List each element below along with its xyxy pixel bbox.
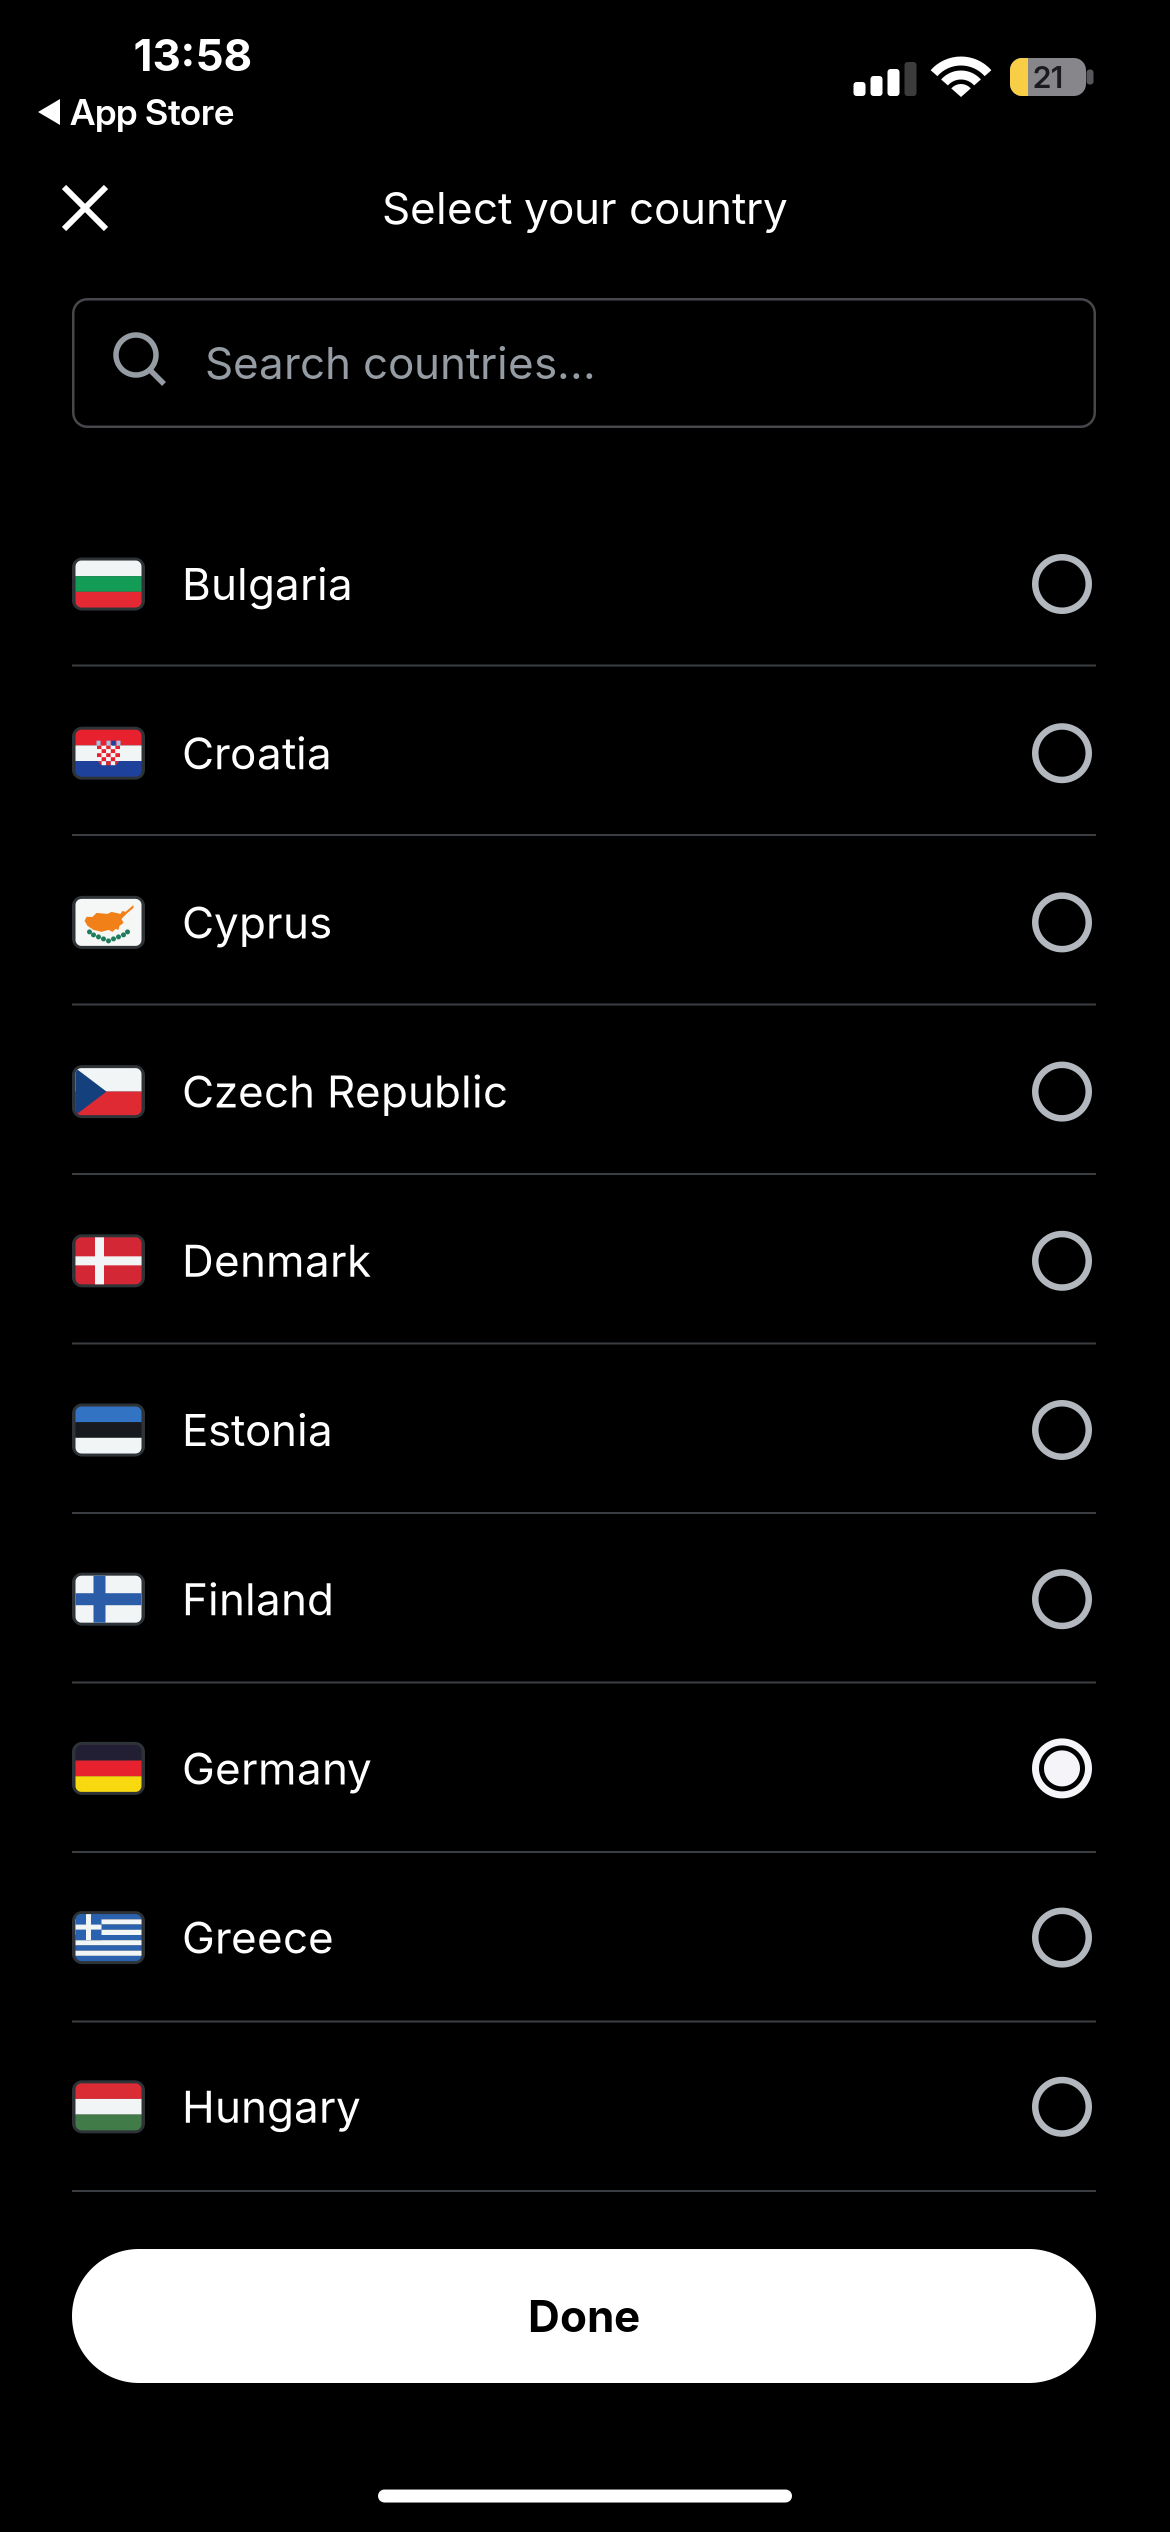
staticText: Finland: [182, 1573, 334, 1626]
staticText: Croatia: [182, 727, 332, 780]
staticText: 13:58: [133, 28, 252, 82]
staticText: Bulgaria: [182, 557, 353, 611]
staticText: Done: [528, 2289, 640, 2343]
staticText: App Store: [70, 90, 234, 134]
staticText: Cyprus: [182, 896, 332, 949]
staticText: Estonia: [182, 1403, 333, 1457]
staticText: Hungary: [182, 2080, 361, 2133]
staticText: Select your country: [382, 181, 788, 235]
staticText: Czech Republic: [182, 1065, 508, 1118]
staticText: Greece: [182, 1911, 334, 1964]
staticText: Denmark: [182, 1234, 371, 1287]
staticText: Search countries...: [205, 336, 596, 390]
staticText: Germany: [182, 1742, 372, 1795]
staticText: 21: [1033, 59, 1063, 95]
